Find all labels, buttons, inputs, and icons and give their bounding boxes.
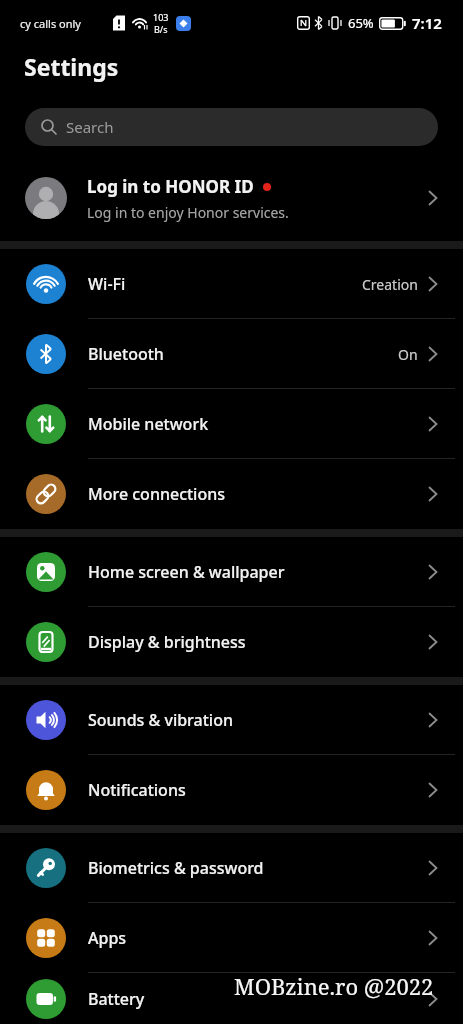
button[interactable]: Search: [25, 108, 438, 146]
button[interactable]: Mobile network: [0, 389, 463, 459]
staticText: More connections: [88, 483, 226, 505]
button[interactable]: Log in to HONOR ID: [0, 146, 463, 241]
button[interactable]: Apps: [0, 903, 463, 973]
staticText: Settings: [24, 51, 119, 82]
staticText: Biometrics & password: [88, 857, 264, 879]
staticText: Log in to HONOR ID: [87, 175, 254, 198]
button[interactable]: Sounds & vibration: [0, 685, 463, 755]
button[interactable]: Wi-Fi: [0, 249, 463, 319]
staticText: 7:12: [412, 13, 442, 33]
staticText: Creation: [362, 275, 418, 294]
staticText: Home screen & wallpaper: [88, 561, 285, 583]
staticText: Bluetooth: [88, 343, 164, 365]
button[interactable]: Bluetooth: [0, 319, 463, 389]
staticText: On: [398, 345, 418, 364]
button[interactable]: Display & brightness: [0, 607, 463, 677]
staticText: MOBzine.ro @2022: [234, 971, 434, 1001]
staticText: Wi-Fi: [88, 273, 126, 295]
staticText: Notifications: [88, 779, 186, 801]
staticText: cy calls only: [20, 16, 81, 31]
staticText: Battery: [88, 988, 145, 1010]
staticText: Log in to enjoy Honor services.: [87, 203, 289, 222]
staticText: Sounds & vibration: [88, 709, 233, 731]
button[interactable]: Battery: [0, 973, 463, 1024]
staticText: B/s: [154, 23, 168, 35]
staticText: Apps: [88, 927, 127, 949]
staticText: Mobile network: [88, 413, 209, 435]
staticText: 65%: [348, 14, 374, 32]
button[interactable]: More connections: [0, 459, 463, 529]
button[interactable]: Home screen & wallpaper: [0, 537, 463, 607]
staticText: Display & brightness: [88, 631, 246, 653]
staticText: 103: [153, 11, 169, 23]
button[interactable]: Biometrics & password: [0, 833, 463, 903]
staticText: Search: [66, 117, 114, 137]
button[interactable]: Notifications: [0, 755, 463, 825]
